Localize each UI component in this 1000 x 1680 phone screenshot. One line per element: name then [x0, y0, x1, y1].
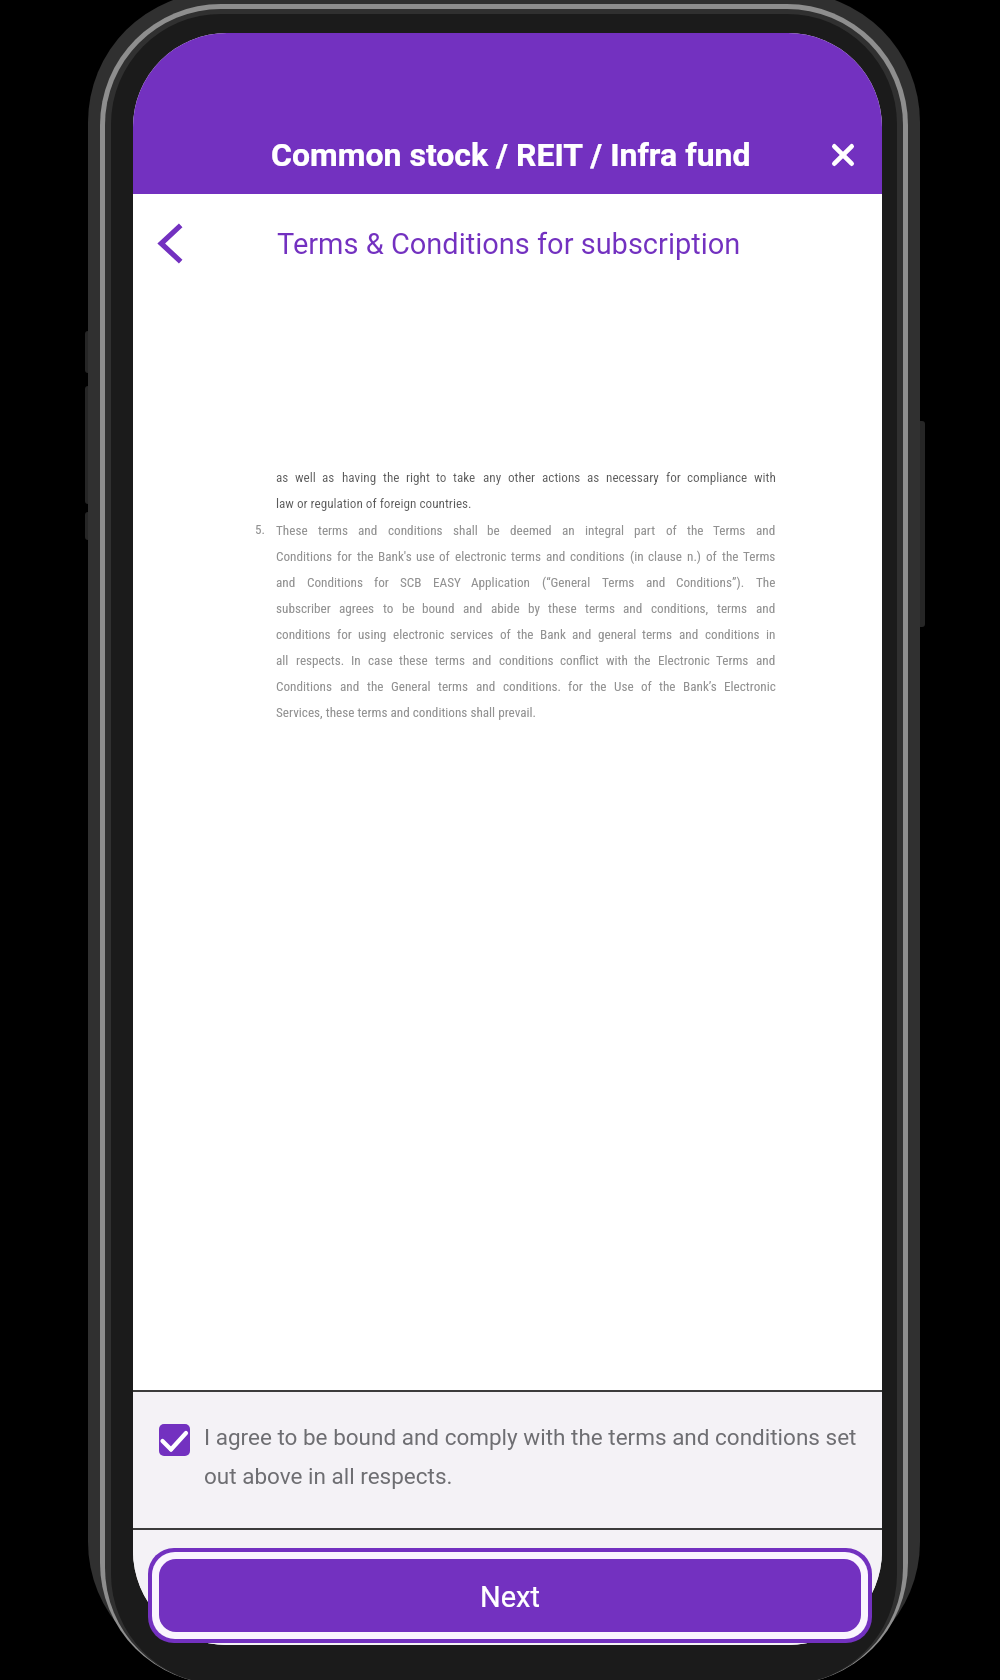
staticText: conditions	[276, 627, 331, 642]
staticText: the	[659, 679, 676, 694]
staticText: for	[374, 575, 389, 590]
staticText: Services, these terms and conditions sha…	[276, 705, 537, 720]
staticText: Next	[480, 1580, 540, 1614]
staticText: of	[439, 549, 450, 564]
staticText: the	[590, 679, 607, 694]
staticText: the	[634, 653, 651, 668]
button[interactable]: Next	[148, 1548, 872, 1643]
staticText: and	[340, 679, 360, 694]
staticText: the	[517, 627, 534, 642]
staticText: use	[416, 549, 435, 564]
staticText: and	[472, 653, 492, 668]
staticText: Conditions	[276, 549, 333, 564]
staticText: necessary	[606, 470, 659, 485]
staticText: all	[276, 653, 289, 668]
staticText: the	[722, 549, 739, 564]
staticText: of	[641, 679, 652, 694]
staticText: Terms	[602, 575, 635, 590]
staticText: compliance	[687, 470, 748, 485]
staticText: respects.	[296, 653, 345, 668]
staticText: Terms	[713, 523, 746, 538]
staticText: right	[406, 470, 430, 485]
staticText: well	[295, 470, 316, 485]
staticText: conditions	[388, 523, 443, 538]
staticText: using	[358, 627, 387, 642]
button[interactable]: Close	[817, 129, 869, 181]
button[interactable]: Agree checkbox, checked	[133, 1392, 882, 1528]
staticText: conditions	[705, 627, 760, 642]
staticText: and	[276, 575, 296, 590]
staticText: in	[766, 627, 776, 642]
staticText: n.)	[687, 549, 702, 564]
staticText: these	[399, 653, 428, 668]
staticText: General	[391, 679, 431, 694]
staticText: and	[572, 627, 592, 642]
staticText: and	[756, 653, 776, 668]
staticText: Terms & Conditions for subscription	[277, 227, 741, 261]
staticText: of	[500, 627, 511, 642]
staticText: terms	[642, 627, 673, 642]
staticText: Bank's	[378, 549, 412, 564]
staticText: as	[276, 470, 289, 485]
staticText: having	[342, 470, 377, 485]
button[interactable]: Back	[141, 214, 199, 272]
staticText: agrees	[339, 601, 375, 616]
staticText: terms	[435, 653, 466, 668]
staticText: and	[756, 523, 776, 538]
staticText: to	[383, 601, 394, 616]
staticText: and	[623, 601, 643, 616]
staticText: services	[450, 627, 494, 642]
staticText: other	[508, 470, 536, 485]
staticText: conflict	[560, 653, 599, 668]
staticText: and	[476, 679, 496, 694]
staticText: clause	[648, 549, 683, 564]
staticText: (in	[630, 549, 644, 564]
staticText: take	[453, 470, 476, 485]
staticText: as	[322, 470, 335, 485]
staticText: Electronic	[724, 679, 776, 694]
staticText: case	[368, 653, 393, 668]
staticText: for	[666, 470, 681, 485]
button[interactable]: Agree checkbox, checked	[159, 1424, 190, 1456]
staticText: an	[562, 523, 575, 538]
staticText: and	[463, 601, 483, 616]
staticText: by	[528, 601, 540, 616]
staticText: integral	[585, 523, 625, 538]
staticText: terms	[585, 601, 616, 616]
staticText: any	[483, 470, 502, 485]
staticText: terms	[438, 679, 469, 694]
staticText: and	[756, 601, 776, 616]
staticText: conditions.	[503, 679, 562, 694]
staticText: SCB	[400, 575, 422, 590]
staticText: be	[402, 601, 415, 616]
staticText: conditions	[499, 653, 554, 668]
staticText: to	[436, 470, 447, 485]
staticText: and	[546, 549, 566, 564]
staticText: actions	[542, 470, 581, 485]
staticText: the	[383, 470, 400, 485]
staticText: shall	[453, 523, 478, 538]
staticText: these	[548, 601, 577, 616]
staticText: and	[358, 523, 378, 538]
staticText: Application	[471, 575, 531, 590]
staticText: with	[606, 653, 628, 668]
staticText: law or regulation of foreign countries.	[276, 496, 472, 511]
staticText: part	[634, 523, 656, 538]
staticText: abide	[491, 601, 520, 616]
staticText: as	[587, 470, 600, 485]
staticText: 5.	[255, 522, 265, 537]
staticText: the	[367, 679, 384, 694]
staticText: Bank’s	[683, 679, 717, 694]
staticText: with	[754, 470, 776, 485]
staticText: terms	[318, 523, 349, 538]
staticText: the	[687, 523, 704, 538]
staticText: terms	[717, 601, 748, 616]
staticText: be	[487, 523, 500, 538]
staticText: In	[351, 653, 361, 668]
staticText: Conditions	[276, 679, 333, 694]
staticText: Terms	[716, 653, 749, 668]
staticText: subscriber	[276, 601, 331, 616]
staticText: (“General	[542, 575, 591, 590]
staticText: The	[756, 575, 776, 590]
staticText: Use	[614, 679, 634, 694]
